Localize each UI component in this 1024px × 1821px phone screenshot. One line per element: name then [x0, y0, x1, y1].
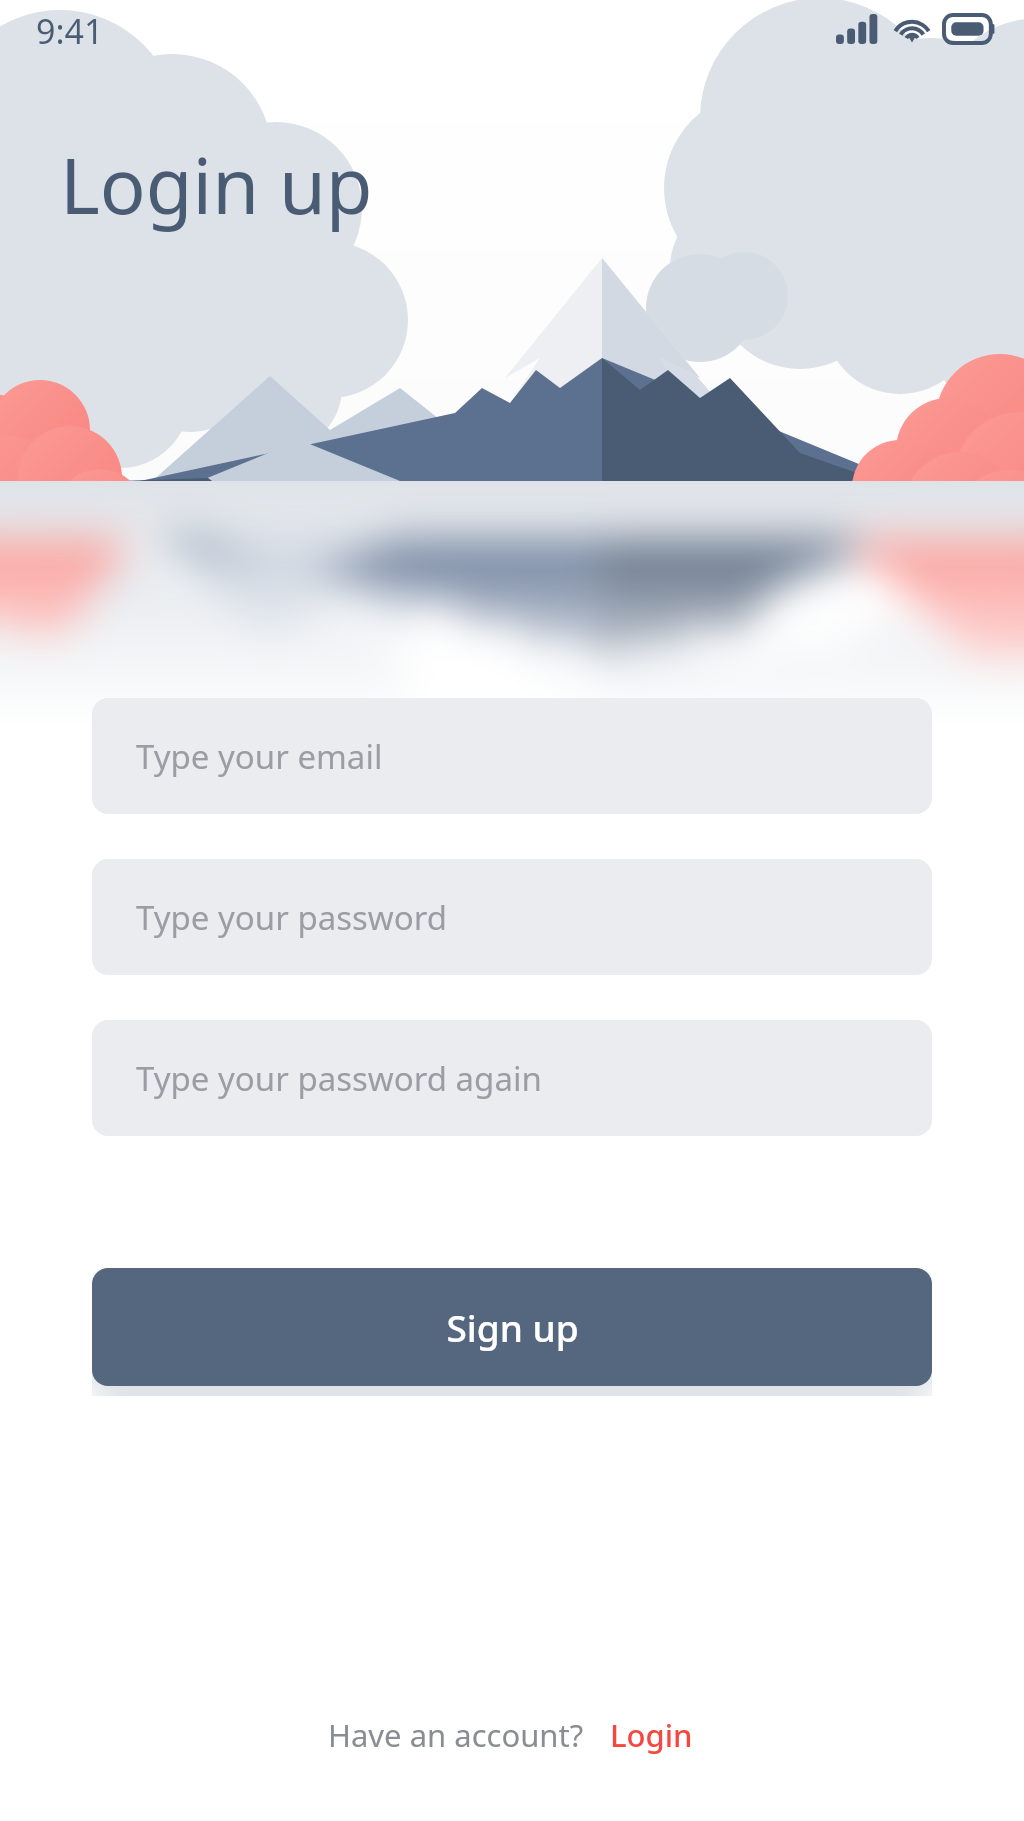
- staticText: Login: [610, 1714, 693, 1756]
- staticText: Login up: [60, 133, 373, 237]
- staticText: Type your email: [136, 734, 383, 779]
- button[interactable]: Type your password: [92, 859, 932, 975]
- staticText: Type your password again: [136, 1056, 542, 1101]
- button[interactable]: Sign up: [92, 1268, 932, 1386]
- staticText: Have an account?: [328, 1714, 584, 1756]
- staticText: Sign up: [446, 1302, 579, 1352]
- button[interactable]: Type your email: [92, 698, 932, 814]
- button[interactable]: Login: [606, 1710, 697, 1760]
- staticText: 9:41: [36, 8, 104, 54]
- staticText: Type your password: [136, 895, 447, 940]
- button[interactable]: Type your password again: [92, 1020, 932, 1136]
- other: Signal, Wi-Fi and battery status: [836, 14, 996, 44]
